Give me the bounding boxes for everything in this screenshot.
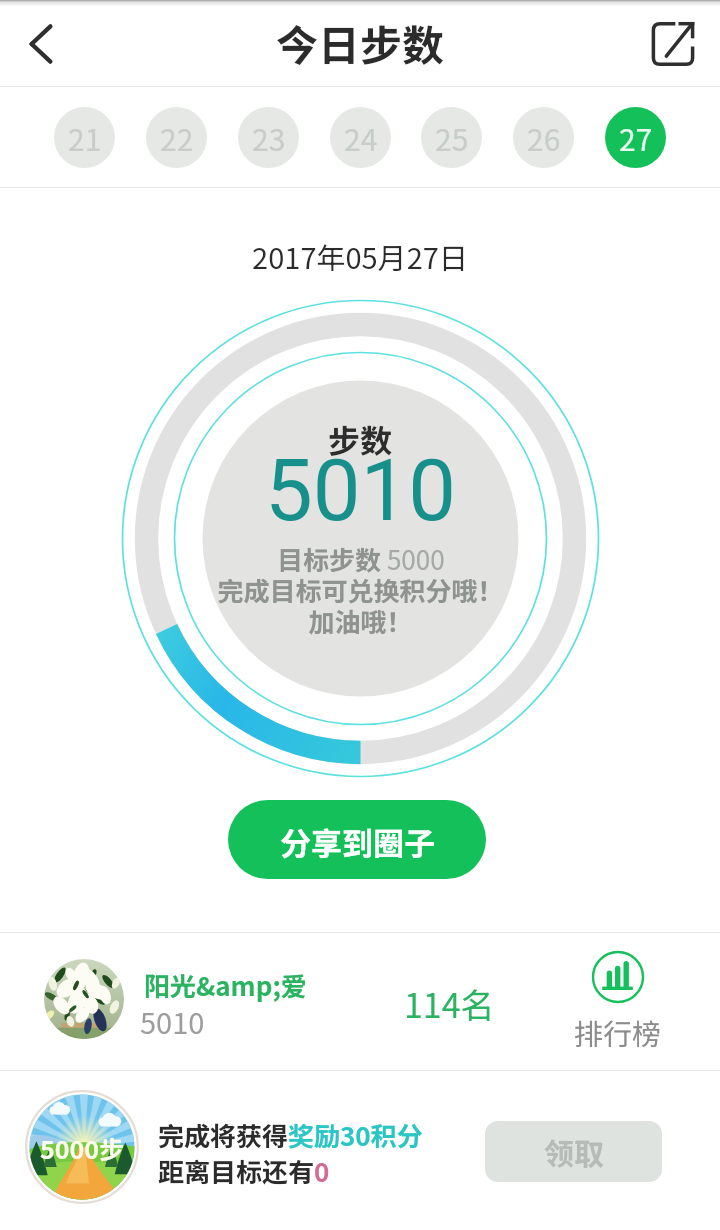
staticText: 23 <box>252 116 286 159</box>
button[interactable]: 24 <box>330 107 391 168</box>
button[interactable]: 排行榜 <box>568 951 668 1053</box>
staticText: 114名 <box>404 979 495 1028</box>
staticText: 5000步 <box>40 1130 125 1166</box>
staticText: 5010 <box>140 1000 205 1042</box>
staticText: 5010 <box>265 441 457 541</box>
button[interactable]: 阳光&amp;爱 <box>0 933 720 1070</box>
button[interactable]: 22 <box>146 107 207 168</box>
staticText: 领取 <box>544 1130 604 1173</box>
button[interactable]: 26 <box>513 107 574 168</box>
button[interactable]: Share <box>640 11 706 77</box>
staticText: 距离目标还有0 <box>158 1152 330 1190</box>
staticText: 今日步数 <box>276 12 445 73</box>
button[interactable]: 21 <box>54 107 115 168</box>
staticText: 目标步数 5000 <box>277 540 445 578</box>
staticText: 25 <box>435 116 469 159</box>
staticText: 完成目标可兑换积分哦！ 加油哦！ <box>217 571 504 639</box>
button[interactable]: 23 <box>238 107 299 168</box>
button[interactable]: 25 <box>421 107 482 168</box>
staticText: 27 <box>619 116 653 159</box>
button[interactable]: 分享到圈子 <box>228 800 486 879</box>
staticText: 24 <box>344 116 378 159</box>
staticText: 21 <box>68 116 102 159</box>
staticText: 26 <box>527 116 561 159</box>
staticText: 阳光&amp;爱 <box>144 966 307 1004</box>
staticText: 完成将获得奖励30积分 <box>158 1116 423 1154</box>
button[interactable]: 领取 <box>485 1121 662 1182</box>
staticText: 排行榜 <box>574 1011 662 1053</box>
staticText: 22 <box>160 116 194 159</box>
button[interactable]: 27 <box>605 107 666 168</box>
button[interactable]: Back <box>8 11 74 77</box>
staticText: 分享到圈子 <box>280 819 435 864</box>
staticText: 2017年05月27日 <box>0 235 720 277</box>
staticText: 步数 <box>328 416 393 462</box>
